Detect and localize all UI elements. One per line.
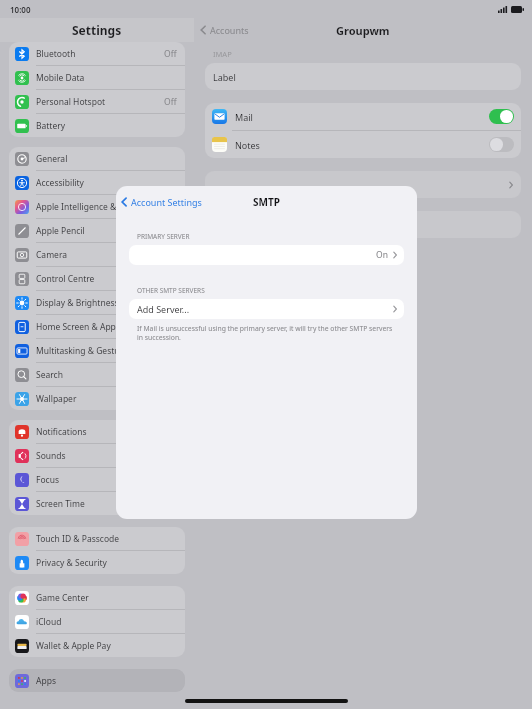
- staticText: Search: [36, 369, 177, 381]
- staticText: Off: [164, 96, 177, 108]
- staticText: PRIMARY SERVER: [137, 232, 190, 241]
- staticText: Mobile Data: [36, 72, 177, 84]
- button[interactable]: Mail on: [489, 109, 514, 124]
- button[interactable]: Accounts: [200, 24, 249, 36]
- button[interactable]: Apps: [9, 669, 185, 692]
- staticText: Account Settings: [131, 196, 202, 208]
- button[interactable]: Touch ID & Passcode: [9, 527, 185, 551]
- staticText: Notifications: [36, 426, 177, 438]
- button[interactable]: Personal Hotspot: [9, 90, 185, 114]
- button[interactable]: Camera: [9, 243, 185, 267]
- staticText: Wallet & Apple Pay: [36, 640, 177, 652]
- staticText: Bluetooth: [36, 48, 164, 60]
- button[interactable]: Wallet & Apple Pay: [9, 634, 185, 657]
- button[interactable]: Sounds: [9, 444, 185, 468]
- button[interactable]: Label: [205, 63, 521, 90]
- button[interactable]: Notes off: [489, 137, 514, 152]
- staticText: Touch ID & Passcode: [36, 533, 177, 545]
- staticText: Game Center: [36, 592, 177, 604]
- staticText: Screen Time: [36, 498, 177, 510]
- button[interactable]: Control Centre: [9, 267, 185, 291]
- staticText: 10:00: [10, 4, 31, 15]
- staticText: IMAP: [213, 49, 232, 59]
- button[interactable]: Notes: [212, 131, 514, 158]
- staticText: Control Centre: [36, 273, 177, 285]
- button[interactable]: iCloud: [9, 610, 185, 634]
- button[interactable]: Add Server...: [129, 299, 404, 319]
- staticText: Home Screen & App Library: [36, 321, 177, 333]
- staticText: Apple Intelligence & Siri: [36, 201, 177, 213]
- staticText: Apple Pencil: [36, 225, 177, 237]
- button[interactable]: Mobile Data: [9, 66, 185, 90]
- staticText: Off: [164, 48, 177, 60]
- button[interactable]: [205, 171, 521, 198]
- staticText: Accessibility: [36, 177, 177, 189]
- button[interactable]: Wallpaper: [9, 387, 185, 410]
- staticText: Settings: [72, 22, 122, 38]
- button[interactable]: Accessibility: [9, 171, 185, 195]
- button[interactable]: Display & Brightness: [9, 291, 185, 315]
- staticText: Battery: [36, 120, 177, 132]
- button[interactable]: Game Center: [9, 586, 185, 610]
- button[interactable]: [205, 211, 521, 238]
- staticText: Sounds: [36, 450, 177, 462]
- button[interactable]: Search: [9, 363, 185, 387]
- staticText: General: [36, 153, 177, 165]
- button[interactable]: Apple Pencil: [9, 219, 185, 243]
- button[interactable]: Home Screen & App Library: [9, 315, 185, 339]
- staticText: iCloud: [36, 616, 177, 628]
- staticText: Accounts: [210, 24, 249, 36]
- staticText: Notes: [235, 139, 489, 151]
- button[interactable]: Focus: [9, 468, 185, 492]
- staticText: Mail: [235, 111, 489, 123]
- staticText: Wallpaper: [36, 393, 177, 405]
- button[interactable]: Notifications: [9, 420, 185, 444]
- staticText: Apps: [36, 675, 177, 687]
- staticText: Privacy & Security: [36, 557, 177, 569]
- button[interactable]: Battery: [9, 114, 185, 137]
- staticText: Add Server...: [137, 303, 190, 315]
- staticText: OTHER SMTP SERVERS: [137, 286, 205, 295]
- staticText: Focus: [36, 474, 177, 486]
- staticText: SMTP: [253, 195, 280, 209]
- button[interactable]: General: [9, 147, 185, 171]
- staticText: Personal Hotspot: [36, 96, 164, 108]
- staticText: Multitasking & Gestures: [36, 345, 177, 357]
- button[interactable]: Screen Time: [9, 492, 185, 515]
- staticText: If Mail is unsuccessful using the primar…: [137, 324, 400, 342]
- button[interactable]: Multitasking & Gestures: [9, 339, 185, 363]
- button[interactable]: On: [129, 245, 404, 265]
- staticText: Camera: [36, 249, 177, 261]
- staticText: On: [376, 249, 388, 261]
- staticText: Label: [213, 71, 236, 83]
- button[interactable]: Apple Intelligence & Siri: [9, 195, 185, 219]
- button[interactable]: Bluetooth: [9, 42, 185, 66]
- button[interactable]: Mail: [212, 103, 514, 130]
- button[interactable]: Account Settings: [121, 196, 202, 208]
- staticText: Display & Brightness: [36, 297, 177, 309]
- button[interactable]: Privacy & Security: [9, 551, 185, 574]
- staticText: Groupwm: [336, 23, 390, 38]
